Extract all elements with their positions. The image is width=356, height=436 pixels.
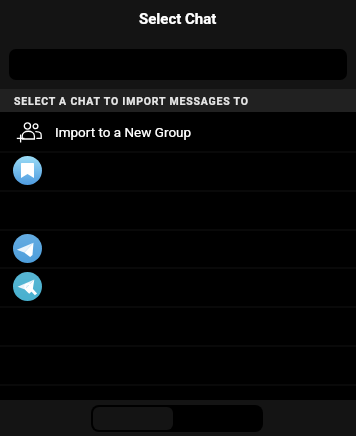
button[interactable]: Saved Messages <box>0 152 356 191</box>
staticText: Import to a New Group <box>55 124 192 140</box>
staticText: Select Chat <box>139 10 217 28</box>
staticText: SELECT A CHAT TO IMPORT MESSAGES TO <box>14 95 249 107</box>
button[interactable]: Telegram <box>0 230 356 269</box>
button[interactable]: Telegram Beta <box>0 268 356 307</box>
button[interactable]: Import to a New Group <box>0 113 356 152</box>
